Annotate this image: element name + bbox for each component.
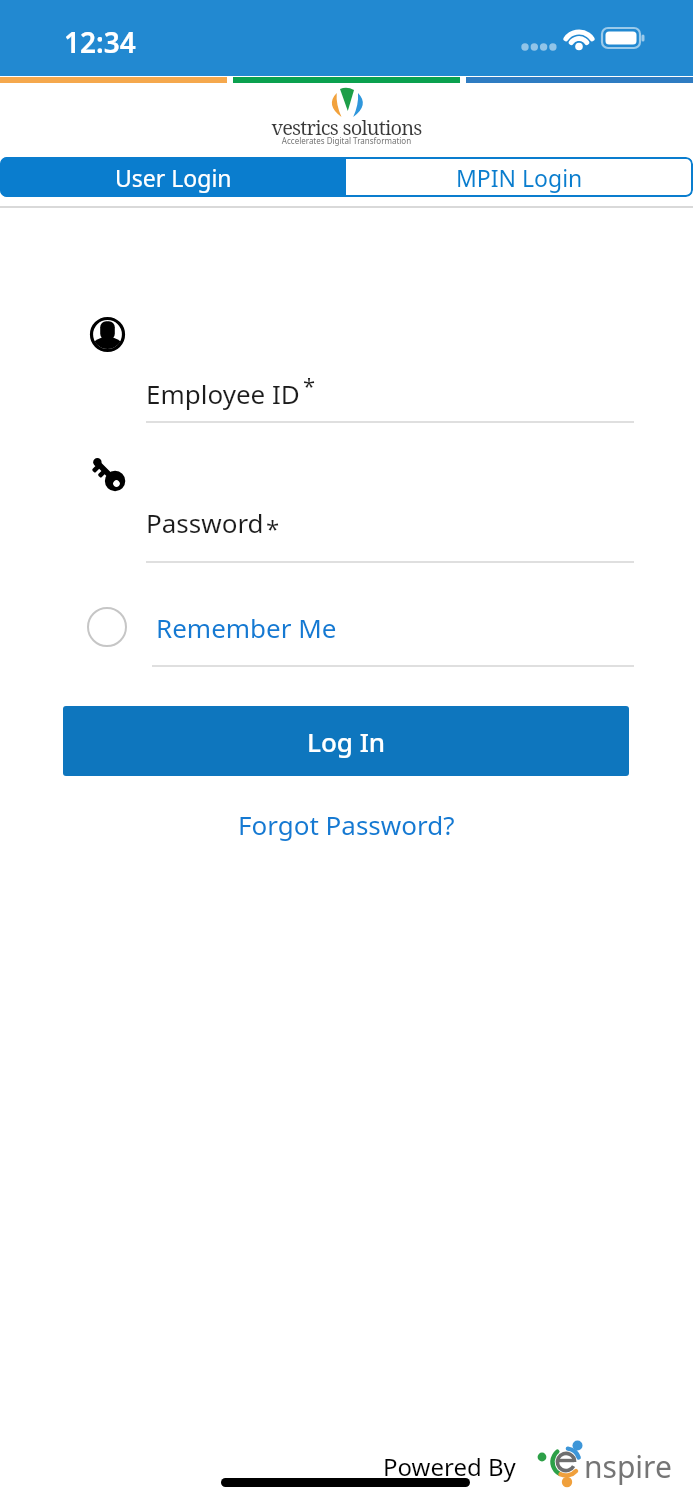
staticText: Password: [146, 505, 264, 540]
staticText: Remember Me: [156, 610, 337, 645]
button[interactable]: User Login: [0, 157, 346, 197]
staticText: User Login: [115, 162, 232, 193]
button[interactable]: Remember Me: [87, 607, 337, 647]
staticText: *: [303, 370, 316, 400]
button[interactable]: MPIN Login: [346, 157, 693, 197]
button[interactable]: Forgot Password?: [226, 803, 466, 845]
button[interactable]: Log In: [63, 706, 629, 776]
staticText: MPIN Login: [456, 162, 583, 193]
staticText: *: [266, 512, 280, 545]
staticText: Powered By: [383, 1450, 516, 1483]
staticText: 12:34: [64, 23, 136, 61]
staticText: Employee ID: [146, 376, 300, 411]
staticText: Log In: [307, 724, 386, 759]
staticText: Forgot Password?: [238, 807, 455, 842]
staticText: nspire: [584, 1446, 672, 1487]
staticText: vestrics solutions: [0, 114, 693, 141]
staticText: Accelerates Digital Transformation: [0, 135, 693, 146]
